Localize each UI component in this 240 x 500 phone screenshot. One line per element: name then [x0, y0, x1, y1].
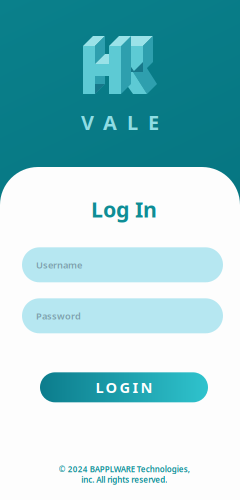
staticText: Password	[36, 310, 81, 322]
staticText: Username	[36, 259, 82, 271]
button[interactable]: LOGIN	[40, 372, 208, 402]
staticText: Log In	[91, 195, 157, 223]
staticText: VALE	[81, 109, 159, 136]
staticText: LOGIN	[95, 378, 152, 397]
staticText: © 2024 BAPPLWARE Technologies, inc. All …	[58, 464, 189, 485]
